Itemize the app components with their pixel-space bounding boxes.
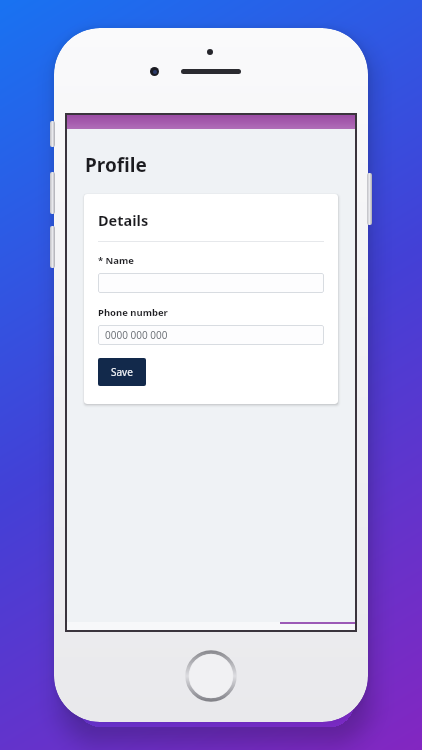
button[interactable]: Save (98, 358, 146, 386)
staticText: Details (98, 210, 149, 230)
staticText: 0000 000 000 (105, 328, 168, 342)
button[interactable] (98, 273, 324, 293)
staticText: Phone number (98, 306, 168, 319)
button[interactable]: Home (185, 650, 237, 702)
staticText: * Name (98, 254, 134, 267)
staticText: Save (111, 365, 133, 379)
button[interactable]: 0000 000 000 (98, 325, 324, 345)
staticText: Profile (85, 152, 147, 178)
